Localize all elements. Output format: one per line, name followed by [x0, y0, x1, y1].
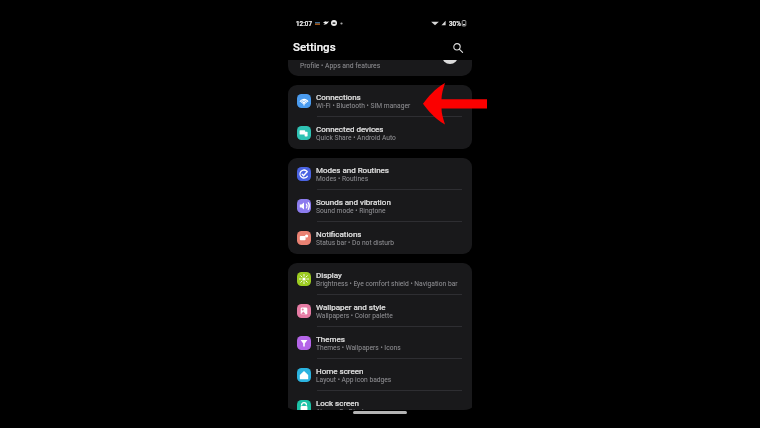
staticText: Connected devices — [316, 125, 384, 134]
staticText: Sounds and vibration — [316, 198, 391, 207]
button[interactable]: Connected devices — [288, 117, 472, 149]
staticText: Status bar • Do not disturb — [316, 239, 394, 247]
staticText: Modes and Routines — [316, 166, 389, 175]
button[interactable]: Lock screen — [288, 391, 472, 410]
staticText: Lock screen — [316, 399, 359, 408]
button[interactable]: Sounds and vibration — [288, 190, 472, 222]
staticText: Profile • Apps and features — [300, 62, 381, 70]
staticText: Themes • Wallpapers • Icons — [316, 344, 401, 352]
staticText: Settings — [293, 40, 336, 53]
button[interactable]: Display — [288, 263, 472, 295]
button[interactable]: Home screen — [288, 359, 472, 391]
staticText: Display — [316, 271, 342, 280]
button[interactable]: Themes — [288, 327, 472, 359]
button[interactable]: Notifications — [288, 222, 472, 254]
staticText: Modes • Routines — [316, 175, 369, 183]
staticText: Home screen — [316, 367, 364, 376]
staticText: Notifications — [316, 230, 362, 239]
button[interactable]: Wallpaper and style — [288, 295, 472, 327]
staticText: Brightness • Eye comfort shield • Naviga… — [316, 280, 458, 288]
button[interactable]: Search — [449, 40, 467, 56]
staticText: Sound mode • Ringtone — [316, 207, 386, 215]
staticText: Wi-Fi • Bluetooth • SIM manager — [316, 102, 411, 110]
staticText: Connections — [316, 93, 361, 102]
staticText: Wallpapers • Color palette — [316, 312, 393, 320]
staticText: 12:07 — [296, 20, 312, 27]
button[interactable]: Modes and Routines — [288, 158, 472, 190]
button[interactable]: Connections — [288, 85, 472, 117]
staticText: Layout • App icon badges — [316, 376, 392, 384]
button[interactable]: Profile • Apps and features — [288, 60, 472, 76]
staticText: Themes — [316, 335, 345, 344]
staticText: Always On Display — [316, 408, 371, 410]
staticText: Wallpaper and style — [316, 303, 386, 312]
staticText: Quick Share • Android Auto — [316, 134, 396, 142]
staticText: 30% — [449, 20, 461, 27]
